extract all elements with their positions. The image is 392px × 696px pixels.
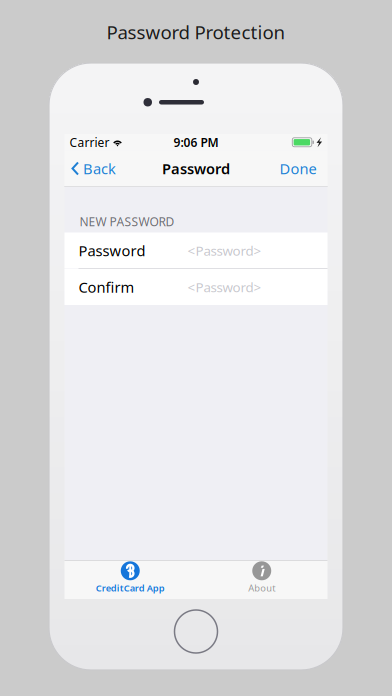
- staticText: Confirm: [78, 277, 134, 297]
- staticText: NEW PASSWORD: [79, 214, 174, 229]
- staticText: <Password>: [187, 278, 261, 296]
- staticText: Password: [78, 241, 145, 260]
- button[interactable]: Done: [268, 150, 327, 186]
- staticText: Password: [162, 159, 230, 178]
- button[interactable]: About: [196, 560, 327, 599]
- staticText: <Password>: [187, 242, 261, 259]
- button[interactable]: CreditCard App: [64, 560, 196, 599]
- staticText: Back: [83, 159, 116, 178]
- button[interactable]: Confirm: [64, 269, 327, 305]
- staticText: Carrier: [69, 134, 109, 150]
- staticText: Password Protection: [106, 20, 285, 44]
- staticText: Done: [279, 159, 316, 178]
- button[interactable]: Back: [64, 150, 123, 186]
- staticText: CreditCard App: [96, 582, 165, 594]
- staticText: 9:06 PM: [173, 134, 218, 150]
- staticText: About: [248, 582, 275, 594]
- button[interactable]: Password: [64, 232, 327, 268]
